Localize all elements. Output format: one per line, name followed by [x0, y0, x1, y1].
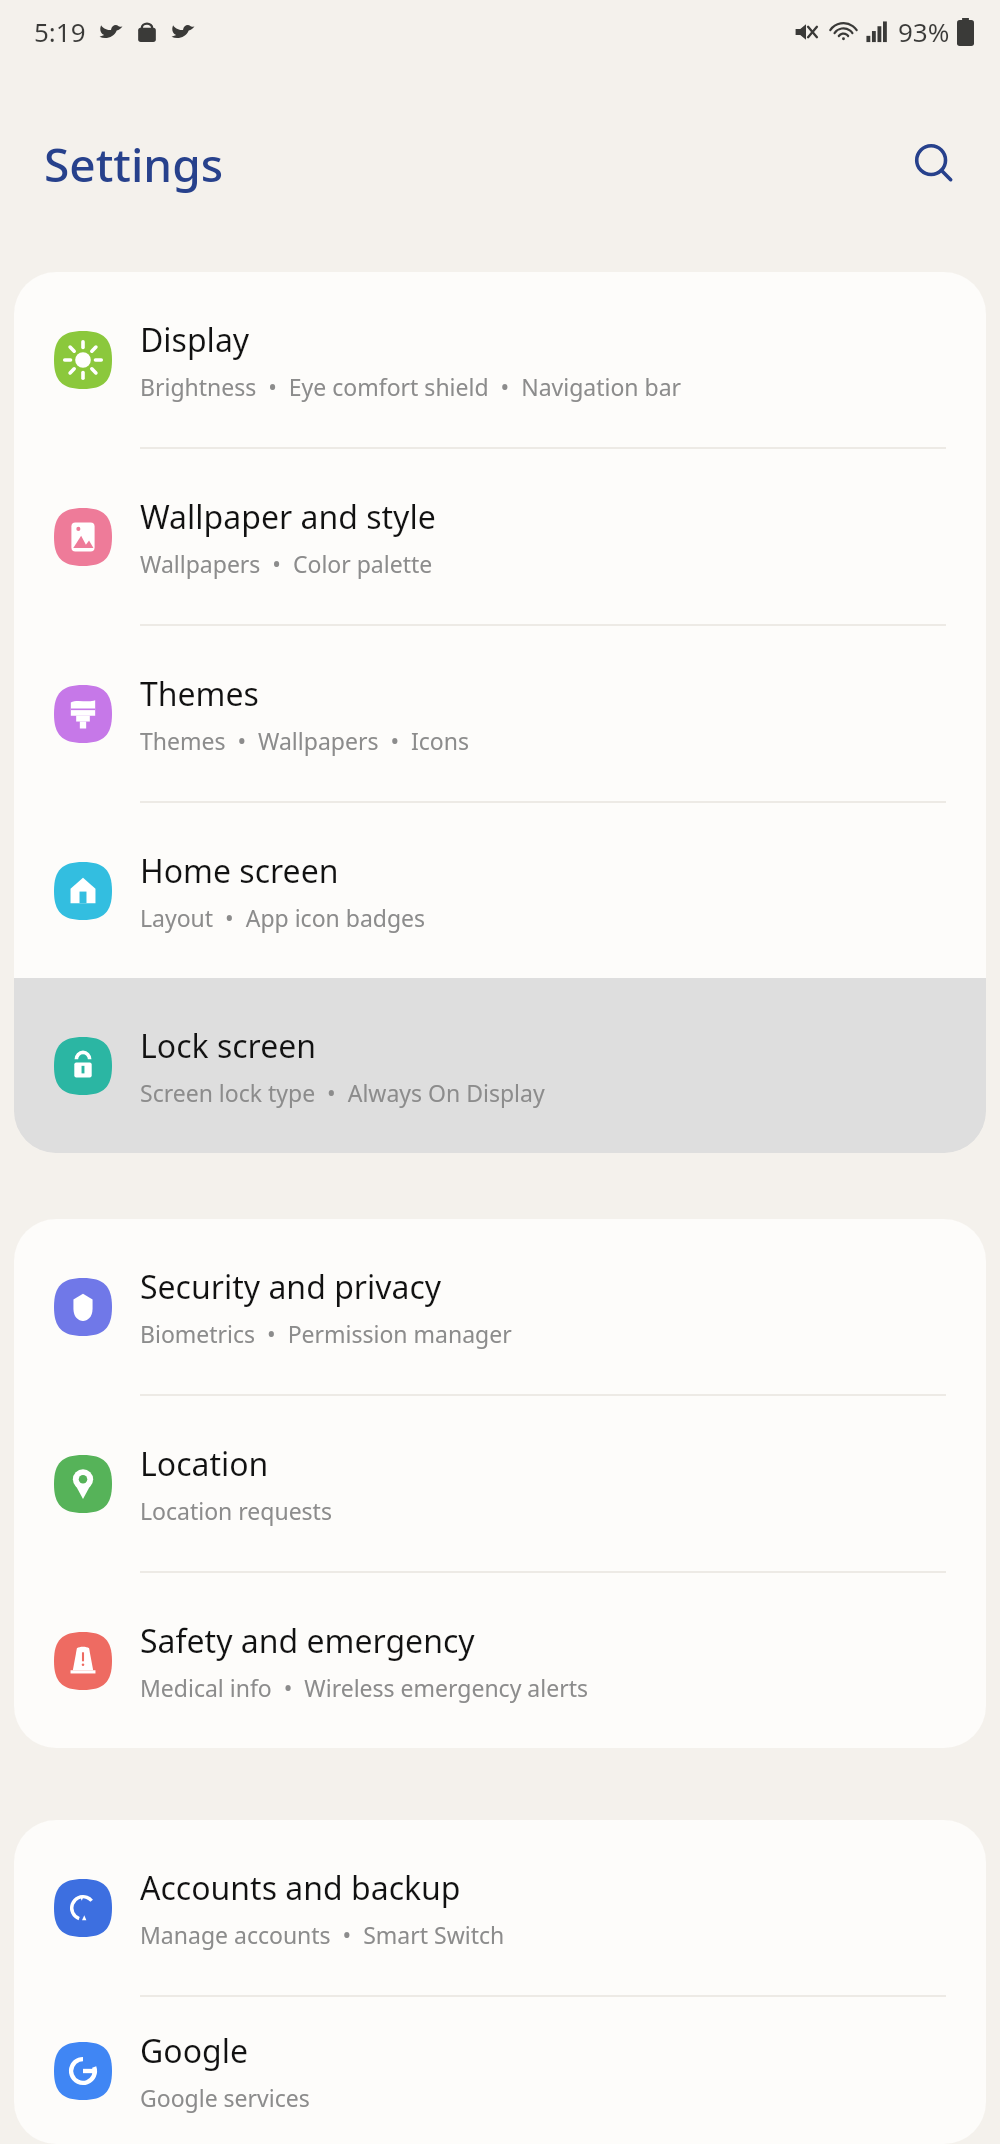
staticText: 5:19: [34, 14, 86, 49]
staticText: Themes • Wallpapers • Icons: [140, 725, 469, 756]
staticText: Themes: [140, 672, 259, 716]
staticText: Screen lock type • Always On Display: [140, 1077, 545, 1108]
staticText: Medical info • Wireless emergency alerts: [140, 1672, 588, 1703]
button[interactable]: Google: [14, 1997, 986, 2144]
staticText: Location: [140, 1442, 269, 1486]
staticText: Lock screen: [140, 1024, 317, 1068]
staticText: Layout • App icon badges: [140, 902, 426, 933]
staticText: Google: [140, 2029, 249, 2073]
staticText: Safety and emergency: [140, 1619, 475, 1663]
button[interactable]: Lock screen: [14, 978, 986, 1153]
staticText: Brightness • Eye comfort shield • Naviga…: [140, 371, 682, 402]
button[interactable]: Home screen: [14, 803, 986, 978]
staticText: Wallpapers • Color palette: [140, 548, 433, 579]
staticText: Security and privacy: [140, 1265, 442, 1309]
staticText: Wallpaper and style: [140, 495, 436, 539]
button[interactable]: Safety and emergency: [14, 1573, 986, 1748]
staticText: Settings: [44, 133, 224, 196]
button[interactable]: Themes: [14, 626, 986, 801]
button[interactable]: Search: [898, 128, 970, 200]
button[interactable]: Accounts and backup: [14, 1820, 986, 1995]
button[interactable]: Security and privacy: [14, 1219, 986, 1394]
button[interactable]: Display: [14, 272, 986, 447]
staticText: 93%: [898, 14, 950, 49]
button[interactable]: Location: [14, 1396, 986, 1571]
staticText: Manage accounts • Smart Switch: [140, 1919, 505, 1950]
button[interactable]: Wallpaper and style: [14, 449, 986, 624]
staticText: Biometrics • Permission manager: [140, 1318, 512, 1349]
staticText: Google services: [140, 2082, 310, 2113]
staticText: Location requests: [140, 1495, 332, 1526]
staticText: Home screen: [140, 849, 339, 893]
staticText: Accounts and backup: [140, 1866, 461, 1910]
staticText: Display: [140, 318, 250, 362]
